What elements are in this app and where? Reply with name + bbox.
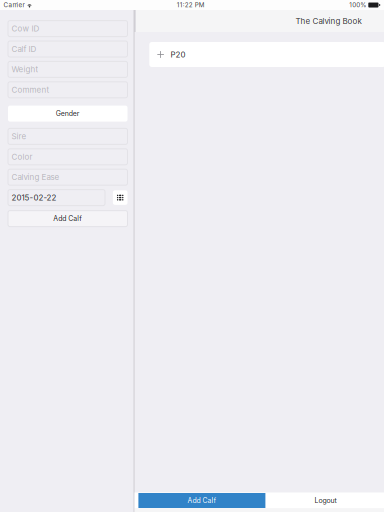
button[interactable]: 2015-02-22 bbox=[8, 190, 105, 206]
staticText: 100% bbox=[349, 1, 366, 9]
staticText: P20 bbox=[170, 50, 185, 59]
staticText: Color bbox=[11, 152, 32, 162]
staticText: Comment bbox=[11, 85, 49, 95]
button[interactable]: Weight bbox=[8, 61, 127, 77]
button[interactable]: P20 bbox=[149, 42, 384, 67]
staticText: Weight bbox=[11, 65, 38, 74]
staticText: Sire bbox=[11, 132, 26, 141]
button[interactable]: Calf ID bbox=[8, 41, 127, 57]
staticText: Add Calf bbox=[53, 214, 82, 223]
staticText: 11:22 PM bbox=[177, 1, 205, 9]
button[interactable]: Comment bbox=[8, 82, 127, 98]
button[interactable]: Add Calf bbox=[138, 493, 265, 508]
button[interactable]: Logout bbox=[265, 493, 384, 508]
button[interactable]: Gender bbox=[8, 106, 127, 122]
button[interactable]: Choose date bbox=[113, 190, 127, 205]
staticText: Add Calf bbox=[187, 496, 216, 505]
staticText: The Calving Book bbox=[295, 16, 361, 26]
staticText: Logout bbox=[314, 496, 336, 505]
button[interactable]: Add Calf bbox=[8, 211, 127, 227]
button[interactable]: Sire bbox=[8, 128, 127, 144]
staticText: Calf ID bbox=[11, 44, 36, 54]
staticText: Carrier bbox=[4, 1, 25, 9]
staticText: Cow ID bbox=[11, 24, 39, 33]
button[interactable]: Calving Ease bbox=[8, 169, 127, 185]
staticText: Gender bbox=[56, 109, 80, 118]
staticText: Calving Ease bbox=[11, 172, 59, 182]
staticText: 2015-02-22 bbox=[11, 193, 56, 202]
button[interactable]: Cow ID bbox=[8, 21, 127, 37]
button[interactable]: Color bbox=[8, 149, 127, 165]
